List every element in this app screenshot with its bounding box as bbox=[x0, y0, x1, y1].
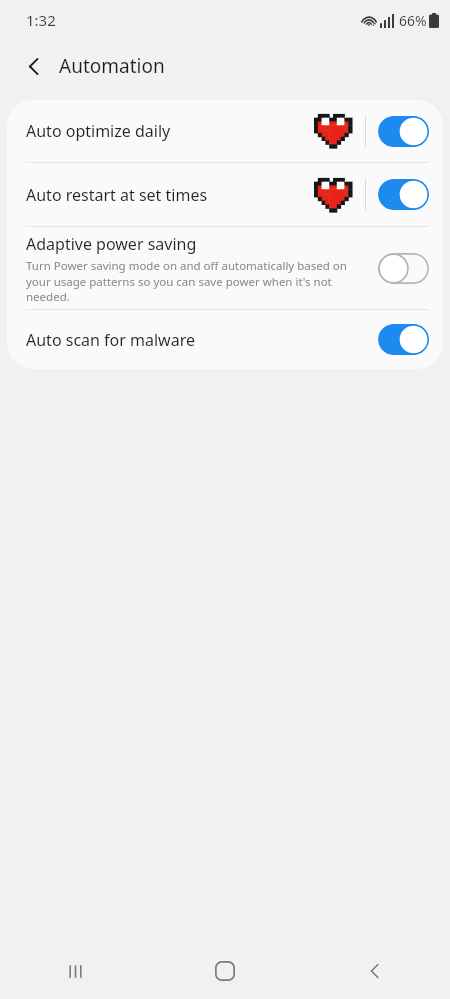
staticText: Auto optimize daily bbox=[26, 120, 171, 142]
staticText: 1:32 bbox=[26, 10, 56, 30]
staticText: Automation bbox=[59, 53, 165, 79]
button[interactable]: Auto scan for malware, on bbox=[378, 324, 429, 355]
button[interactable]: Auto restart at set times bbox=[7, 163, 443, 226]
staticText: Turn Power saving mode on and off automa… bbox=[26, 258, 360, 304]
button[interactable]: Auto scan for malware bbox=[7, 310, 443, 369]
button[interactable]: Auto restart at set times, on bbox=[378, 179, 429, 210]
button[interactable]: Recent apps bbox=[0, 943, 150, 999]
staticText: 66% bbox=[399, 11, 427, 30]
button[interactable]: Back bbox=[12, 44, 56, 88]
staticText: Adaptive power saving bbox=[26, 233, 197, 255]
button[interactable]: Home bbox=[150, 943, 300, 999]
staticText: Auto scan for malware bbox=[26, 329, 195, 351]
button[interactable]: Back bbox=[300, 943, 450, 999]
button[interactable]: Adaptive power saving, off bbox=[378, 253, 429, 284]
staticText: Auto restart at set times bbox=[26, 184, 208, 206]
button[interactable]: Adaptive power saving bbox=[7, 227, 443, 309]
button[interactable]: Auto optimize daily bbox=[7, 100, 443, 162]
button[interactable]: Auto optimize daily, on bbox=[378, 116, 429, 147]
